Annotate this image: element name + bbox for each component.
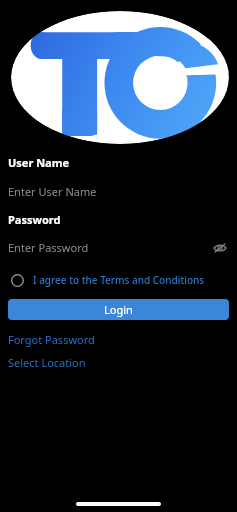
staticText: User Name — [8, 155, 70, 170]
staticText: Password — [8, 212, 61, 227]
staticText: Select Location — [8, 355, 86, 370]
staticText: Enter User Name — [8, 184, 97, 199]
button[interactable]: Select Location — [8, 355, 229, 370]
staticText: Enter Password — [8, 240, 89, 255]
button[interactable]: Forgot Password — [8, 332, 229, 347]
button[interactable]: I agree to the Terms and Conditions — [8, 270, 229, 290]
button[interactable]: Login — [8, 299, 229, 320]
staticText: Login — [104, 302, 133, 317]
staticText: I agree to the Terms and Conditions — [33, 273, 205, 287]
button[interactable]: Show password — [211, 239, 229, 256]
button[interactable]: Enter User Name — [8, 183, 229, 199]
button[interactable]: Enter Password — [8, 239, 229, 256]
staticText: Forgot Password — [8, 332, 95, 347]
